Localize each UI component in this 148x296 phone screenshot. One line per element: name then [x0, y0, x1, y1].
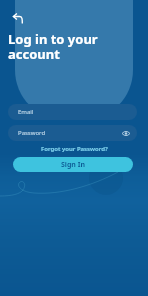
button[interactable]: Sign In: [13, 157, 133, 172]
staticText: Forgot your Password?: [41, 145, 108, 153]
staticText: Sign In: [61, 160, 86, 170]
button[interactable]: Password: [8, 125, 137, 141]
staticText: Log in to your account: [8, 30, 98, 63]
staticText: Password: [18, 129, 46, 137]
button[interactable]: Back: [9, 9, 27, 27]
button[interactable]: Forgot your Password?: [41, 145, 108, 153]
staticText: Email: [18, 108, 34, 116]
button[interactable]: Email: [8, 104, 137, 120]
